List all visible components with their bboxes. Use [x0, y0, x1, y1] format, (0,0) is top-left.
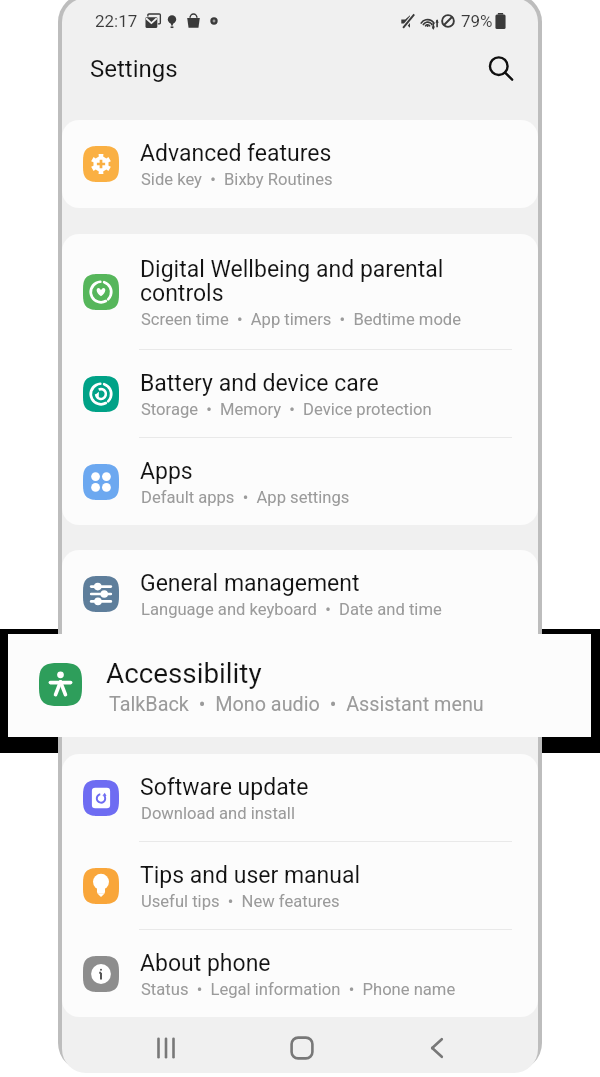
- staticText: 79%: [461, 11, 493, 31]
- button[interactable]: Digital Wellbeing and parental controls: [62, 234, 538, 350]
- staticText: 22:17: [95, 11, 138, 31]
- button[interactable]: Recent apps: [142, 1024, 190, 1072]
- button[interactable]: About phone: [62, 930, 538, 1017]
- staticText: Side key • Bixby Routines: [141, 170, 333, 189]
- staticText: Download and install: [141, 804, 295, 823]
- staticText: Screen time • App timers • Bedtime mode: [141, 310, 462, 329]
- staticText: Useful tips • New features: [141, 892, 340, 911]
- button[interactable]: Software update: [62, 754, 538, 842]
- staticText: Accessibility: [106, 657, 262, 690]
- staticText: Accessibility: [140, 658, 269, 685]
- staticText: Storage • Memory • Device protection: [141, 400, 432, 419]
- staticText: Status • Legal information • Phone name: [141, 980, 456, 999]
- staticText: Tips and user manual: [140, 862, 361, 889]
- staticText: TalkBack • Mono audio • Assistant menu: [141, 688, 456, 707]
- button[interactable]: Tips and user manual: [62, 842, 538, 930]
- staticText: Digital Wellbeing and parental controls: [140, 256, 460, 307]
- button[interactable]: Accessibility: [62, 638, 538, 725]
- staticText: Default apps • App settings: [141, 488, 350, 507]
- button[interactable]: Apps: [62, 438, 538, 525]
- button[interactable]: Battery and device care: [62, 350, 538, 438]
- staticText: General management: [140, 570, 360, 597]
- button[interactable]: Accessibility: [8, 634, 591, 737]
- staticText: About phone: [140, 950, 271, 977]
- staticText: Settings: [90, 55, 178, 83]
- button[interactable]: General management: [62, 550, 538, 638]
- staticText: Language and keyboard • Date and time: [141, 600, 442, 619]
- staticText: Advanced features: [140, 140, 332, 167]
- button[interactable]: Search: [481, 49, 521, 89]
- button[interactable]: Advanced features: [62, 120, 538, 208]
- staticText: Apps: [140, 458, 193, 485]
- button[interactable]: Home: [278, 1024, 326, 1072]
- staticText: Software update: [140, 774, 309, 801]
- staticText: TalkBack • Mono audio • Assistant menu: [109, 693, 484, 716]
- button[interactable]: Back: [413, 1024, 461, 1072]
- staticText: Battery and device care: [140, 370, 379, 397]
